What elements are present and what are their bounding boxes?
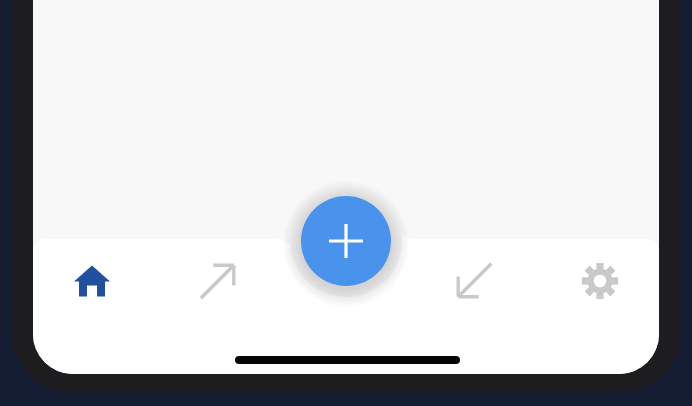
button[interactable]: Add — [301, 196, 391, 286]
button[interactable]: Home — [52, 246, 132, 316]
button[interactable]: Settings — [560, 246, 640, 316]
button[interactable]: Send — [178, 246, 258, 316]
button[interactable]: Receive — [434, 246, 514, 316]
button[interactable]: Home indicator — [235, 348, 460, 372]
